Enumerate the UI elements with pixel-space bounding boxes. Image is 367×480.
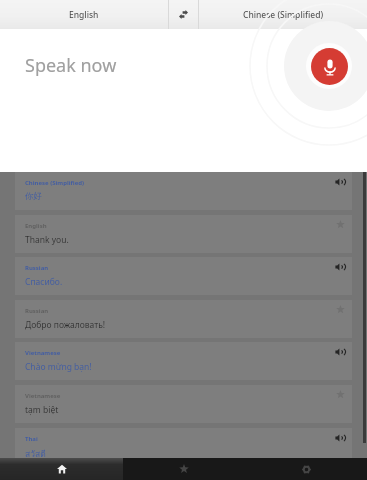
button[interactable]: Vietnamese	[15, 342, 352, 380]
staticText: สวัสดี	[25, 447, 46, 458]
staticText: Russian	[25, 307, 49, 315]
button[interactable]: Microphone	[311, 48, 348, 85]
staticText: English	[69, 9, 99, 21]
button[interactable]: Swap languages	[169, 0, 198, 29]
button[interactable]: Settings	[245, 458, 367, 480]
button[interactable]: Russian	[15, 257, 352, 295]
staticText: Chinese (Simplified)	[25, 179, 85, 187]
button[interactable]: Chinese (Simplified)	[15, 172, 352, 210]
button[interactable]: Chinese (Simplified)	[199, 0, 367, 29]
button[interactable]: English	[0, 0, 168, 29]
button[interactable]: Russian	[15, 300, 352, 338]
staticText: 你好	[25, 191, 42, 202]
staticText: Russian	[25, 264, 49, 272]
staticText: English	[25, 222, 47, 230]
staticText: Добро пожаловать!	[25, 319, 106, 331]
staticText: tạm biệt	[25, 404, 59, 416]
staticText: Спасибо.	[25, 276, 63, 288]
button[interactable]: Starred	[123, 458, 245, 480]
staticText: Thai	[25, 435, 38, 443]
staticText: Vietnamese	[25, 349, 61, 357]
button[interactable]: English	[15, 215, 352, 253]
staticText: Chinese (Simplified)	[243, 9, 324, 21]
button[interactable]: Vietnamese	[15, 385, 352, 423]
staticText: Thank you.	[25, 234, 69, 246]
button[interactable]: Thai	[15, 428, 352, 458]
staticText: Chào mừng bạn!	[25, 361, 92, 373]
staticText: Vietnamese	[25, 392, 61, 400]
button[interactable]: Home	[0, 458, 123, 480]
staticText: Speak now	[25, 53, 117, 78]
